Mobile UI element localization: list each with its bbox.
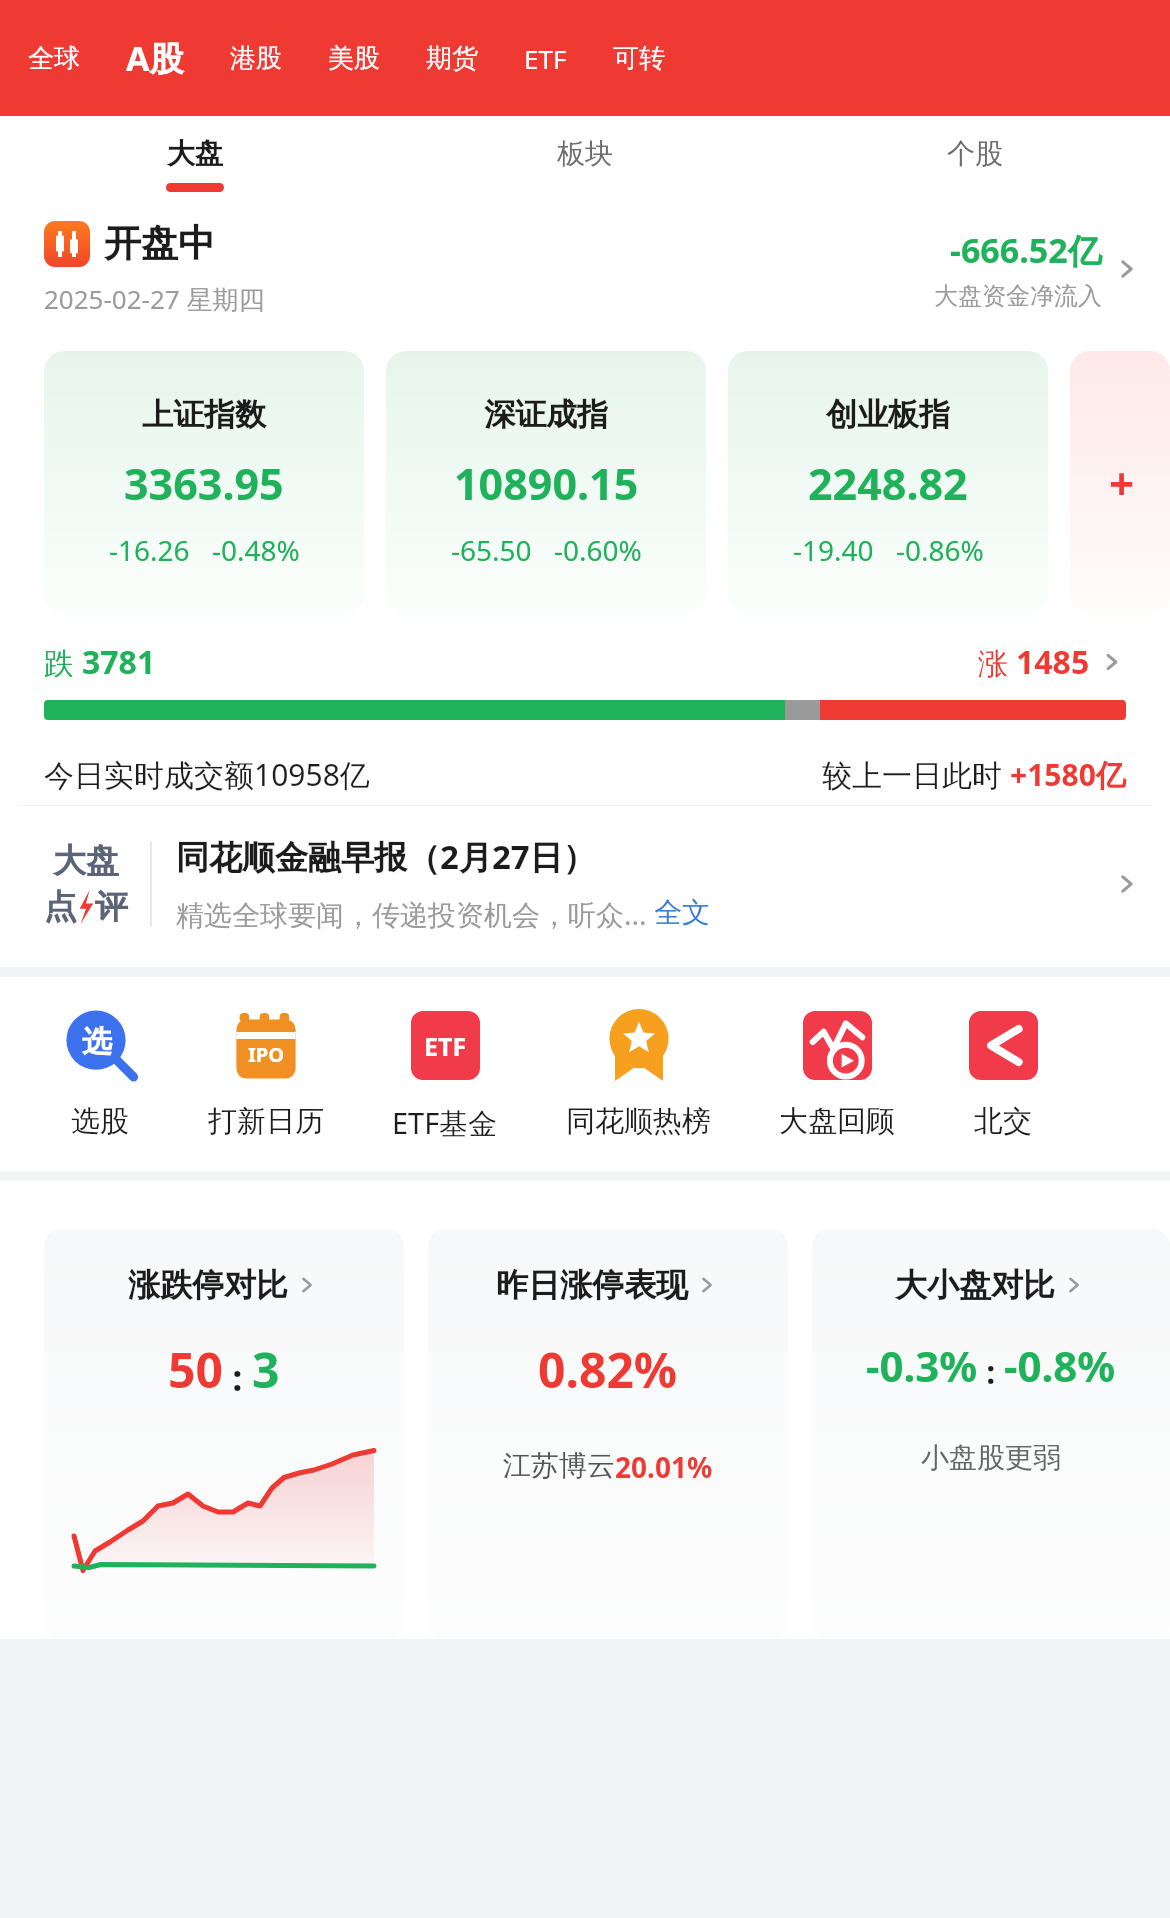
- staticText: 同花顺金融早报（2月27日）: [176, 834, 596, 879]
- staticText: ETF基金: [392, 1103, 498, 1143]
- button[interactable]: 上证指数: [44, 351, 364, 614]
- staticText: 评: [95, 886, 128, 928]
- staticText: 选股: [71, 1103, 129, 1140]
- other: 打新日历: [226, 1005, 306, 1085]
- staticText: -0.60%: [554, 531, 642, 569]
- staticText: +1580亿: [1010, 754, 1126, 795]
- staticText: ETF: [424, 1029, 467, 1063]
- staticText: 个股: [947, 136, 1003, 171]
- button[interactable]: 同花顺热榜: [566, 1005, 711, 1140]
- other: 大盘回顾: [797, 1005, 877, 1085]
- staticText: 大盘资金净流入: [934, 281, 1102, 311]
- staticText: 3781: [82, 640, 156, 684]
- button[interactable]: 选股: [60, 1005, 140, 1140]
- button[interactable]: 期货: [426, 42, 478, 75]
- staticText: -65.50: [451, 531, 532, 569]
- staticText: 打新日历: [208, 1103, 324, 1140]
- button[interactable]: 可转: [613, 42, 665, 75]
- staticText: 20.01%: [615, 1448, 713, 1486]
- other: 同花顺热榜: [599, 1005, 679, 1085]
- staticText: 选: [82, 1023, 112, 1061]
- staticText: 昨日涨停表现: [496, 1265, 688, 1305]
- button[interactable]: 个股: [780, 116, 1170, 206]
- staticText: +: [1109, 453, 1135, 513]
- staticText: 10890.15: [454, 454, 639, 513]
- button[interactable]: 大盘: [0, 116, 390, 206]
- staticText: 2248.82: [808, 454, 968, 513]
- staticText: 50: [168, 1337, 223, 1402]
- staticText: 涨跌停对比: [128, 1265, 288, 1305]
- button[interactable]: 美股: [328, 42, 380, 75]
- staticText: 大盘: [53, 840, 119, 882]
- staticText: 美股: [328, 42, 380, 75]
- staticText: 点: [44, 886, 77, 928]
- staticText: 跌: [44, 642, 82, 683]
- staticText: -0.8%: [1004, 1337, 1116, 1394]
- staticText: 今日实时成交额10958亿: [44, 754, 370, 795]
- staticText: 同花顺热榜: [566, 1103, 711, 1140]
- button[interactable]: 创业板指: [728, 351, 1048, 614]
- staticText: 大盘回顾: [779, 1103, 895, 1140]
- staticText: 0.82%: [538, 1337, 678, 1402]
- staticText: 板块: [557, 136, 613, 171]
- button[interactable]: 港股: [230, 42, 282, 75]
- staticText: ETF: [524, 41, 567, 76]
- staticText: -19.40: [793, 531, 874, 569]
- staticText: 创业板指: [826, 395, 950, 434]
- staticText: A股: [126, 35, 184, 81]
- button[interactable]: A股: [126, 35, 184, 81]
- button[interactable]: 昨日涨停表现: [428, 1229, 788, 1639]
- button[interactable]: 大盘回顾: [779, 1005, 895, 1140]
- staticText: 江苏博云: [503, 1448, 615, 1483]
- button[interactable]: 北交所: [963, 1005, 1043, 1140]
- button[interactable]: 跌: [44, 640, 1126, 684]
- staticText: 较上一日此时: [822, 754, 1010, 795]
- staticText: 3: [252, 1337, 280, 1402]
- staticText: -0.3%: [866, 1337, 978, 1394]
- button[interactable]: ETF: [524, 41, 567, 76]
- staticText: 3363.95: [124, 454, 284, 513]
- button[interactable]: 大盘: [44, 834, 1142, 933]
- staticText: -16.26: [109, 531, 190, 569]
- staticText: -0.86%: [896, 531, 984, 569]
- staticText: 期货: [426, 42, 478, 75]
- staticText: 1485: [1016, 640, 1090, 684]
- staticText: IPO: [248, 1041, 285, 1068]
- staticText: 上证指数: [142, 395, 266, 434]
- button[interactable]: 打新日历: [208, 1005, 324, 1140]
- staticText: 北交: [974, 1103, 1032, 1140]
- staticText: 深证成指: [484, 395, 608, 434]
- staticText: 大小盘对比: [895, 1265, 1055, 1305]
- staticText: 涨: [978, 642, 1016, 683]
- button[interactable]: ETF基金: [392, 1005, 498, 1143]
- other: 北交所: [963, 1005, 1043, 1085]
- button[interactable]: 全球: [28, 42, 80, 75]
- staticText: 精选全球要闻，传递投资机会，听众...: [176, 895, 654, 933]
- button[interactable]: 深证成指: [386, 351, 706, 614]
- staticText: 2025-02-27 星期四: [44, 281, 265, 317]
- button[interactable]: 开盘中: [44, 220, 1142, 317]
- other: ETF基金: [405, 1005, 485, 1085]
- button[interactable]: 大小盘对比: [812, 1229, 1170, 1639]
- staticText: -0.48%: [212, 531, 300, 569]
- staticText: -666.52亿: [950, 227, 1102, 273]
- staticText: 小盘股更弱: [921, 1440, 1061, 1475]
- staticText: :: [978, 1350, 1004, 1394]
- button[interactable]: 涨跌停对比: [44, 1229, 404, 1639]
- staticText: 可转: [613, 42, 665, 75]
- staticText: 全球: [28, 42, 80, 75]
- staticText: 港股: [230, 42, 282, 75]
- staticText: 开盘中: [104, 220, 215, 267]
- button[interactable]: 板块: [390, 116, 780, 206]
- staticText: :: [223, 1353, 252, 1402]
- staticText: 全文: [654, 895, 710, 930]
- staticText: 大盘: [167, 136, 223, 171]
- other: 选股: [60, 1005, 140, 1085]
